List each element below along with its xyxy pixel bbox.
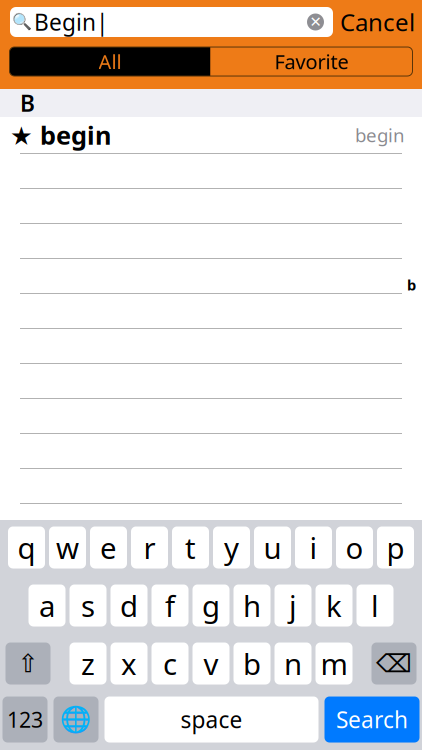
staticText: o bbox=[345, 528, 363, 567]
button[interactable]: w bbox=[49, 526, 86, 568]
button[interactable]: i bbox=[295, 526, 332, 568]
button[interactable]: k bbox=[315, 584, 352, 626]
button[interactable]: t bbox=[172, 526, 209, 568]
button[interactable]: v bbox=[192, 642, 229, 684]
button[interactable]: d bbox=[110, 584, 147, 626]
staticText: c bbox=[163, 644, 177, 683]
staticText: Cancel bbox=[340, 6, 415, 38]
button[interactable]: 🌐 bbox=[53, 696, 98, 742]
staticText: begin bbox=[355, 123, 405, 147]
staticText: u bbox=[263, 528, 281, 567]
staticText: v bbox=[203, 644, 218, 683]
staticText: Favorite bbox=[274, 48, 348, 75]
staticText: ✕ bbox=[309, 14, 321, 30]
button[interactable]: y bbox=[213, 526, 250, 568]
staticText: x bbox=[121, 644, 137, 683]
staticText: m bbox=[320, 644, 347, 683]
button[interactable]: Search bbox=[324, 696, 419, 742]
staticText: ⌫ bbox=[376, 649, 412, 678]
staticText: g bbox=[202, 586, 220, 625]
staticText: All bbox=[98, 48, 121, 75]
button[interactable]: g bbox=[192, 584, 229, 626]
button[interactable]: f bbox=[151, 584, 188, 626]
staticText: k bbox=[326, 586, 342, 625]
staticText: t bbox=[185, 528, 196, 567]
button[interactable]: a bbox=[28, 584, 65, 626]
staticText: Search bbox=[336, 704, 408, 734]
button[interactable]: q bbox=[8, 526, 45, 568]
button[interactable]: r bbox=[131, 526, 168, 568]
button[interactable]: l bbox=[356, 584, 393, 626]
button[interactable]: Clear text bbox=[307, 13, 324, 30]
staticText: i bbox=[309, 528, 317, 567]
staticText: q bbox=[17, 528, 35, 567]
staticText: l bbox=[371, 586, 379, 625]
staticText: d bbox=[120, 586, 138, 625]
staticText: y bbox=[224, 528, 239, 567]
staticText: 123 bbox=[7, 705, 43, 734]
button[interactable]: 123 bbox=[2, 696, 47, 742]
staticText: B bbox=[20, 88, 35, 118]
staticText: ★ begin bbox=[10, 118, 111, 152]
staticText: p bbox=[386, 528, 404, 567]
staticText: ⇧ bbox=[17, 649, 38, 678]
staticText: b bbox=[407, 275, 416, 294]
button[interactable]: space bbox=[104, 696, 318, 742]
staticText: space bbox=[180, 704, 242, 734]
staticText: j bbox=[289, 586, 297, 625]
button[interactable]: e bbox=[90, 526, 127, 568]
staticText: s bbox=[81, 586, 95, 625]
button[interactable]: c bbox=[151, 642, 188, 684]
button[interactable]: ⌫ bbox=[371, 642, 416, 684]
button[interactable]: x bbox=[110, 642, 147, 684]
staticText: e bbox=[100, 528, 117, 567]
staticText: r bbox=[143, 528, 155, 567]
button[interactable]: h bbox=[233, 584, 270, 626]
staticText: h bbox=[243, 586, 261, 625]
button[interactable]: n bbox=[274, 642, 311, 684]
button[interactable]: All bbox=[9, 47, 210, 76]
staticText: Begin| bbox=[34, 7, 108, 37]
staticText: z bbox=[81, 644, 95, 683]
button[interactable]: b bbox=[233, 642, 270, 684]
staticText: f bbox=[165, 586, 175, 625]
button[interactable]: j bbox=[274, 584, 311, 626]
staticText: b bbox=[243, 644, 261, 683]
button[interactable]: ⇧ bbox=[5, 642, 50, 684]
button[interactable]: Favorite bbox=[210, 47, 412, 76]
staticText: 🌐 bbox=[60, 705, 92, 734]
button[interactable]: p bbox=[377, 526, 414, 568]
staticText: n bbox=[284, 644, 302, 683]
button[interactable]: u bbox=[254, 526, 291, 568]
button[interactable]: ★ begin bbox=[0, 117, 422, 153]
staticText: 🔍 bbox=[12, 13, 32, 31]
button[interactable]: s bbox=[69, 584, 106, 626]
button[interactable]: m bbox=[315, 642, 352, 684]
button[interactable]: z bbox=[69, 642, 106, 684]
button[interactable]: Cancel bbox=[333, 7, 422, 37]
staticText: w bbox=[56, 528, 79, 567]
staticText: a bbox=[39, 586, 55, 625]
button[interactable]: o bbox=[336, 526, 373, 568]
